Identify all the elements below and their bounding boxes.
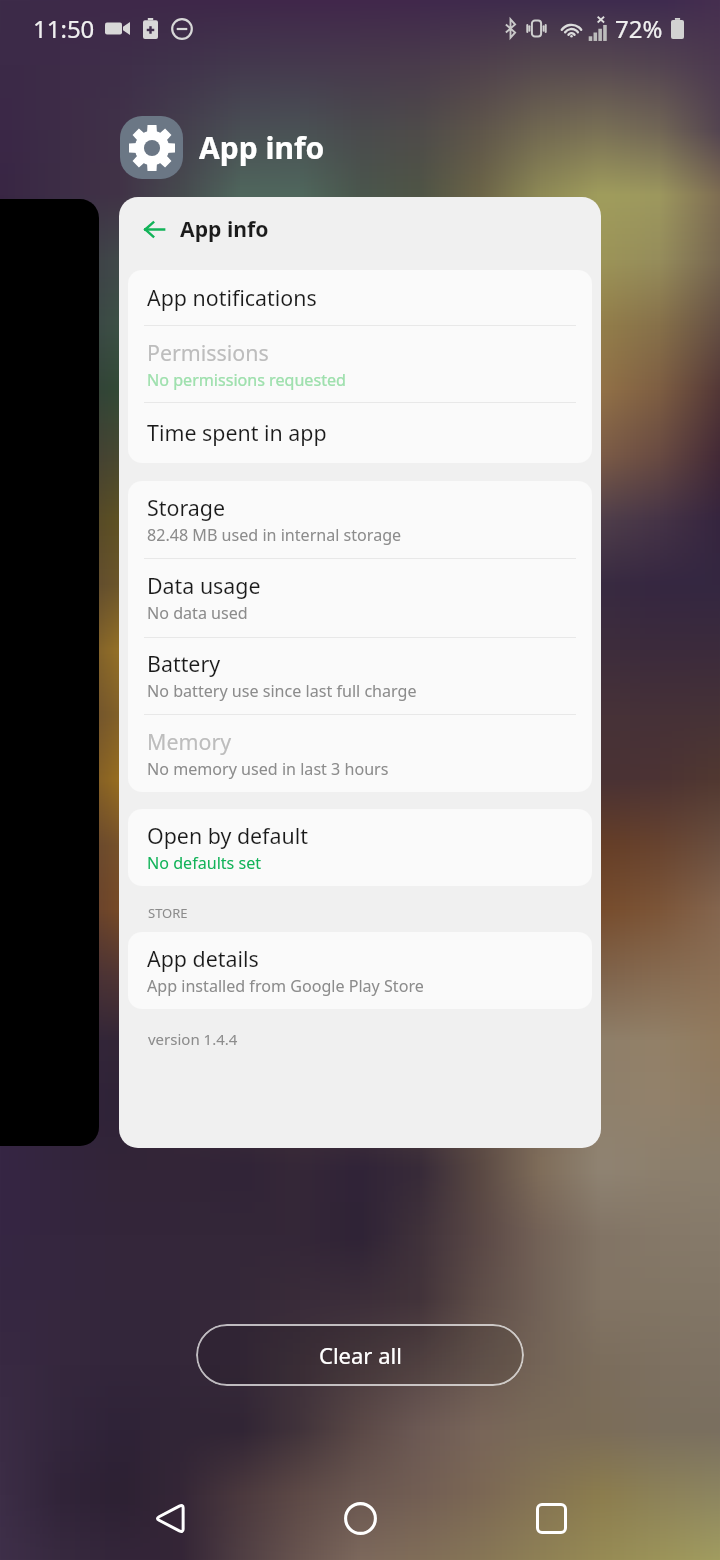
staticText: Clear all — [319, 1340, 402, 1370]
button[interactable]: Recents — [519, 1486, 583, 1550]
staticText: Battery — [147, 649, 221, 678]
staticText: Storage — [147, 493, 226, 522]
staticText: App installed from Google Play Store — [147, 975, 424, 997]
button[interactable]: Settings app icon — [120, 116, 183, 179]
staticText: STORE — [148, 904, 188, 922]
button[interactable]: Permissions — [128, 325, 592, 403]
button[interactable]: App details — [128, 932, 592, 1009]
staticText: No permissions requested — [147, 369, 346, 391]
staticText: No defaults set — [147, 852, 262, 874]
staticText: Open by default — [147, 821, 308, 850]
staticText: Data usage — [147, 571, 261, 600]
button[interactable]: Data usage — [128, 558, 592, 637]
button[interactable]: App notifications — [128, 270, 592, 325]
button[interactable]: Back — [137, 1486, 201, 1550]
button[interactable]: Clear all — [196, 1324, 524, 1386]
staticText: App info — [180, 214, 269, 243]
staticText: Time spent in app — [147, 418, 327, 447]
button[interactable]: Battery — [128, 637, 592, 714]
button[interactable]: Back — [133, 208, 175, 250]
staticText: version 1.4.4 — [148, 1029, 238, 1049]
staticText: 72% — [615, 12, 663, 45]
button[interactable]: Storage — [128, 481, 592, 558]
staticText: Memory — [147, 727, 232, 756]
button[interactable]: Home — [328, 1486, 392, 1550]
staticText: No memory used in last 3 hours — [147, 758, 389, 780]
staticText: App info — [199, 127, 325, 168]
staticText: App details — [147, 944, 259, 973]
staticText: No data used — [147, 602, 248, 624]
staticText: 82.48 MB used in internal storage — [147, 524, 402, 546]
button[interactable]: Open by default — [128, 809, 592, 886]
staticText: Permissions — [147, 338, 269, 367]
staticText: No battery use since last full charge — [147, 680, 417, 702]
staticText: 11:50 — [33, 12, 95, 45]
button[interactable]: Memory — [128, 714, 592, 792]
button[interactable]: Time spent in app — [128, 402, 592, 463]
staticText: App notifications — [147, 283, 317, 312]
